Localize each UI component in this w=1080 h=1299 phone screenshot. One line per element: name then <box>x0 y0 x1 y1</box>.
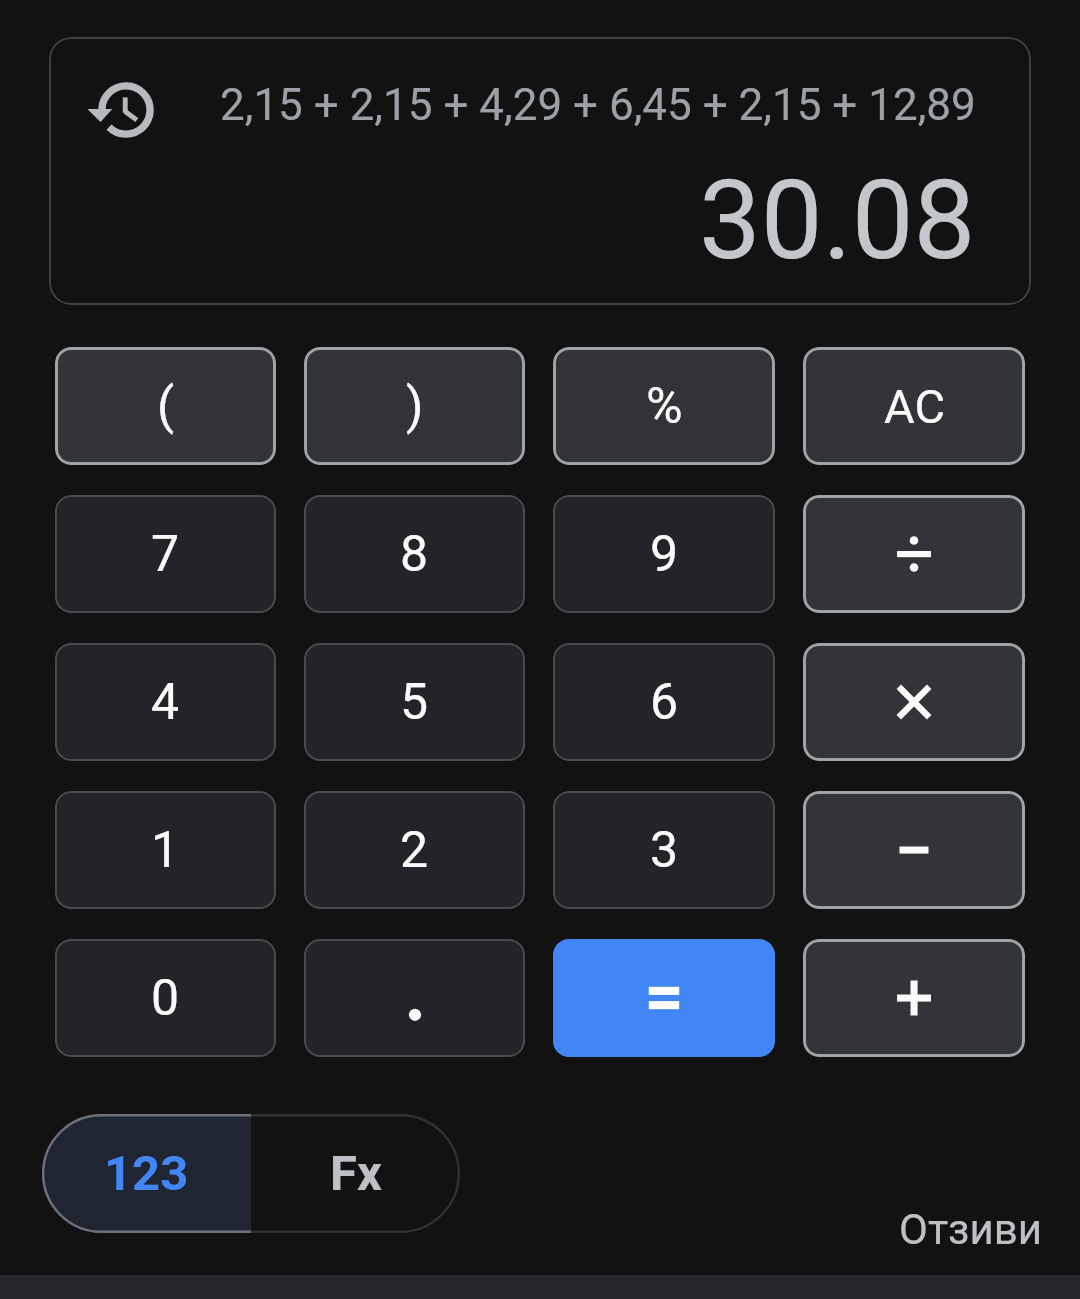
button[interactable]: Equals <box>553 939 775 1057</box>
button[interactable]: Plus <box>803 939 1025 1057</box>
button[interactable]: ( <box>55 347 276 465</box>
staticText: 8 <box>400 525 429 584</box>
button[interactable]: 0 <box>55 939 276 1057</box>
staticText: 9 <box>650 525 679 584</box>
button[interactable]: Divide <box>803 495 1025 613</box>
button[interactable]: 9 <box>553 495 775 613</box>
button[interactable]: 123 <box>42 1114 251 1233</box>
button[interactable]: 3 <box>553 791 775 909</box>
button[interactable]: AC <box>803 347 1025 465</box>
staticText: 2 <box>400 821 429 880</box>
staticText: % <box>646 377 683 436</box>
staticText: 6 <box>650 673 679 732</box>
staticText: 0 <box>151 969 180 1028</box>
staticText: 7 <box>151 525 180 584</box>
staticText: ( <box>157 377 175 436</box>
button[interactable]: Multiply <box>803 643 1025 761</box>
staticText: 2,15 + 2,15 + 4,29 + 6,45 + 2,15 + 12,89 <box>220 79 976 131</box>
button[interactable]: % <box>553 347 775 465</box>
button[interactable]: History <box>98 82 154 138</box>
staticText: Отзиви <box>899 1205 1042 1254</box>
button[interactable]: 1 <box>55 791 276 909</box>
staticText: ) <box>406 377 424 436</box>
staticText: 30.08 <box>699 156 976 285</box>
button[interactable]: 8 <box>304 495 525 613</box>
button[interactable]: Minus <box>803 791 1025 909</box>
button[interactable]: History <box>49 37 1031 305</box>
button[interactable]: 4 <box>55 643 276 761</box>
staticText: 123 <box>104 1145 189 1202</box>
button[interactable]: ) <box>304 347 525 465</box>
button[interactable]: 6 <box>553 643 775 761</box>
staticText: AC <box>884 379 945 434</box>
button[interactable]: 5 <box>304 643 525 761</box>
button[interactable]: Fx <box>251 1114 460 1233</box>
button[interactable]: 7 <box>55 495 276 613</box>
button[interactable]: Decimal point <box>304 939 525 1057</box>
button[interactable]: 2 <box>304 791 525 909</box>
staticText: Fx <box>330 1145 382 1202</box>
staticText: 3 <box>650 821 679 880</box>
button[interactable]: Отзиви <box>899 1205 1042 1254</box>
staticText: 1 <box>151 821 180 880</box>
staticText: 4 <box>151 673 180 732</box>
staticText: 5 <box>400 673 429 732</box>
